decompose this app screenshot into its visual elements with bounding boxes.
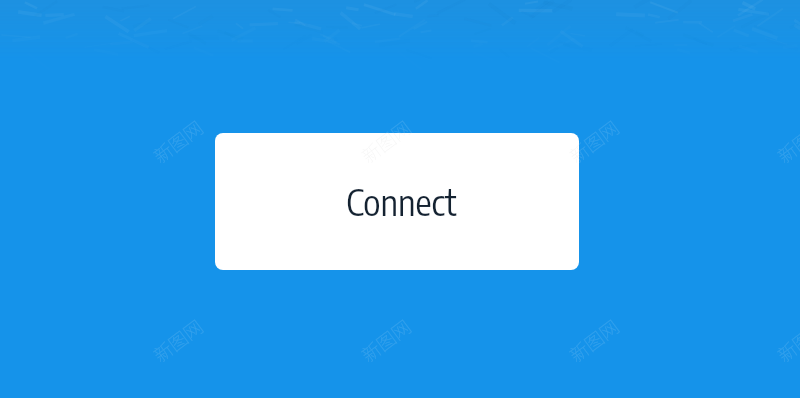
staticText: Connect: [346, 179, 457, 224]
button[interactable]: Connect: [215, 133, 579, 270]
